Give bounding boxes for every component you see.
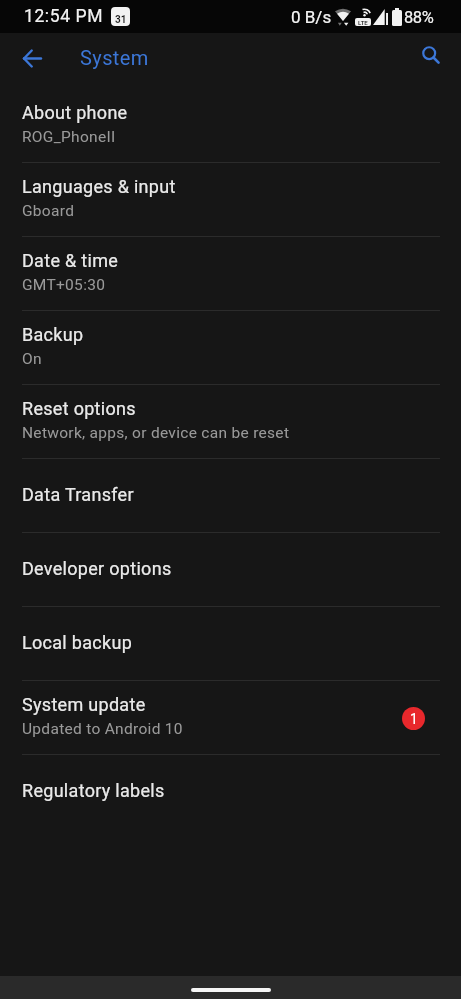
staticText: Date & time	[22, 250, 119, 271]
button[interactable]: Regulatory labels	[0, 755, 461, 829]
button[interactable]: Backup	[0, 311, 461, 385]
staticText: Data Transfer	[22, 484, 134, 505]
staticText: Updated to Android 10	[22, 720, 183, 738]
staticText: Languages & input	[22, 176, 176, 197]
staticText: Developer options	[22, 558, 172, 579]
button[interactable]: Developer options	[0, 533, 461, 607]
staticText: 1	[410, 711, 418, 727]
staticText: LTE	[358, 19, 368, 26]
staticText: On	[22, 350, 42, 368]
button[interactable]: Languages & input	[0, 163, 461, 237]
staticText: Backup	[22, 324, 84, 345]
staticText: 0 B/s	[291, 7, 332, 27]
staticText: About phone	[22, 102, 128, 123]
staticText: Local backup	[22, 632, 133, 653]
staticText: GMT+05:30	[22, 276, 106, 294]
staticText: Regulatory labels	[22, 780, 165, 801]
staticText: 88%	[404, 8, 434, 27]
button[interactable]: Reset options	[0, 385, 461, 459]
button[interactable]: System update	[0, 681, 461, 755]
staticText: Reset options	[22, 398, 136, 419]
button[interactable]: About phone	[0, 89, 461, 163]
staticText: Network, apps, or device can be reset	[22, 424, 290, 442]
button[interactable]	[14, 40, 50, 76]
staticText: Gboard	[22, 202, 75, 220]
staticText: System update	[22, 694, 146, 715]
button[interactable]: Data Transfer	[0, 459, 461, 533]
button[interactable]: Date & time	[0, 237, 461, 311]
button[interactable]	[413, 37, 449, 73]
staticText: System	[80, 46, 149, 69]
staticText: ROG_PhoneII	[22, 128, 116, 146]
staticText: 31	[115, 14, 127, 26]
button[interactable]: Local backup	[0, 607, 461, 681]
staticText: 12:54 PM	[24, 6, 104, 27]
